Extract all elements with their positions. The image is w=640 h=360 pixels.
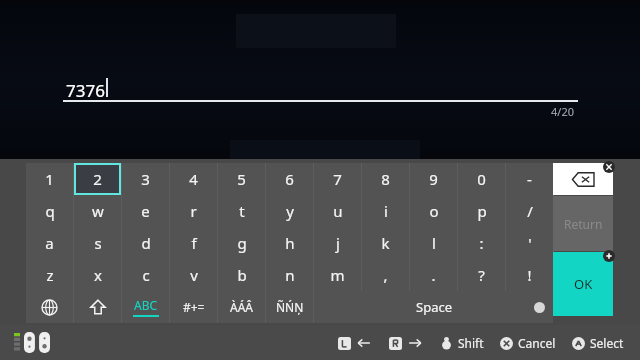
staticText: o: [429, 201, 439, 221]
button[interactable]: ABC: [122, 291, 169, 323]
button[interactable]: #+=: [170, 291, 217, 323]
staticText: 9: [429, 169, 438, 189]
button[interactable]: o: [410, 195, 457, 227]
staticText: Shift: [458, 335, 484, 351]
button[interactable]: 2: [74, 163, 121, 195]
button[interactable]: z: [26, 259, 73, 291]
button[interactable]: h: [266, 227, 313, 259]
button[interactable]: Language: [26, 291, 73, 323]
button[interactable]: d: [122, 227, 169, 259]
button[interactable]: Backspace: [553, 163, 613, 195]
staticText: s: [94, 233, 102, 253]
button[interactable]: r: [170, 195, 217, 227]
staticText: f: [191, 233, 197, 253]
button[interactable]: l: [410, 227, 457, 259]
staticText: Cancel: [518, 335, 556, 351]
button[interactable]: Shift: [74, 291, 121, 323]
staticText: ': [528, 233, 532, 253]
staticText: v: [190, 265, 198, 285]
staticText: 4: [189, 169, 198, 189]
staticText: 2: [93, 169, 102, 189]
button[interactable]: a: [26, 227, 73, 259]
staticText: u: [333, 201, 343, 221]
staticText: 1: [45, 169, 54, 189]
staticText: :: [479, 233, 484, 253]
staticText: 5: [237, 169, 246, 189]
staticText: #+=: [183, 299, 205, 315]
button[interactable]: f: [170, 227, 217, 259]
button[interactable]: 7: [314, 163, 361, 195]
button[interactable]: 1: [26, 163, 73, 195]
staticText: !: [527, 265, 532, 285]
button[interactable]: /: [506, 195, 553, 227]
button[interactable]: 6: [266, 163, 313, 195]
button[interactable]: 5: [218, 163, 265, 195]
staticText: e: [141, 201, 150, 221]
button[interactable]: OK: [553, 252, 613, 316]
button[interactable]: .: [410, 259, 457, 291]
staticText: x: [94, 265, 102, 285]
staticText: y: [286, 201, 294, 221]
staticText: c: [142, 265, 150, 285]
button[interactable]: c: [122, 259, 169, 291]
button[interactable]: k: [362, 227, 409, 259]
staticText: p: [477, 201, 487, 221]
staticText: -: [527, 169, 532, 189]
button[interactable]: ÑŃŅ: [266, 291, 313, 323]
button[interactable]: ÀÁÂ: [218, 291, 265, 323]
staticText: 7376: [66, 79, 105, 102]
button[interactable]: Return: [553, 196, 613, 251]
staticText: j: [336, 233, 340, 253]
button[interactable]: m: [314, 259, 361, 291]
button[interactable]: v: [170, 259, 217, 291]
staticText: Space: [416, 298, 452, 316]
button[interactable]: ': [506, 227, 553, 259]
staticText: t: [239, 201, 245, 221]
button[interactable]: e: [122, 195, 169, 227]
button[interactable]: y: [266, 195, 313, 227]
staticText: a: [45, 233, 54, 253]
button[interactable]: 9: [410, 163, 457, 195]
button[interactable]: 8: [362, 163, 409, 195]
button[interactable]: 4: [170, 163, 217, 195]
button[interactable]: Space: [314, 291, 553, 323]
staticText: m: [330, 265, 345, 285]
button[interactable]: j: [314, 227, 361, 259]
button[interactable]: p: [458, 195, 505, 227]
staticText: 0: [477, 169, 486, 189]
staticText: g: [237, 233, 247, 253]
staticText: 6: [285, 169, 294, 189]
button[interactable]: x: [74, 259, 121, 291]
staticText: z: [46, 265, 54, 285]
button[interactable]: -: [506, 163, 553, 195]
staticText: ?: [478, 265, 485, 285]
staticText: 3: [141, 169, 150, 189]
button[interactable]: g: [218, 227, 265, 259]
button[interactable]: !: [506, 259, 553, 291]
staticText: q: [45, 201, 55, 221]
staticText: b: [237, 265, 247, 285]
staticText: ÀÁÂ: [230, 299, 254, 315]
button[interactable]: 3: [122, 163, 169, 195]
button[interactable]: :: [458, 227, 505, 259]
button[interactable]: 0: [458, 163, 505, 195]
button[interactable]: i: [362, 195, 409, 227]
staticText: h: [285, 233, 295, 253]
button[interactable]: w: [74, 195, 121, 227]
button[interactable]: q: [26, 195, 73, 227]
staticText: w: [92, 201, 104, 221]
staticText: k: [381, 233, 390, 253]
button[interactable]: u: [314, 195, 361, 227]
staticText: ,: [383, 265, 388, 285]
staticText: r: [190, 201, 197, 221]
staticText: ABC: [134, 297, 158, 313]
button[interactable]: ?: [458, 259, 505, 291]
button[interactable]: b: [218, 259, 265, 291]
staticText: Select: [590, 335, 624, 351]
button[interactable]: n: [266, 259, 313, 291]
button[interactable]: ,: [362, 259, 409, 291]
staticText: n: [285, 265, 295, 285]
button[interactable]: t: [218, 195, 265, 227]
button[interactable]: s: [74, 227, 121, 259]
staticText: d: [141, 233, 151, 253]
